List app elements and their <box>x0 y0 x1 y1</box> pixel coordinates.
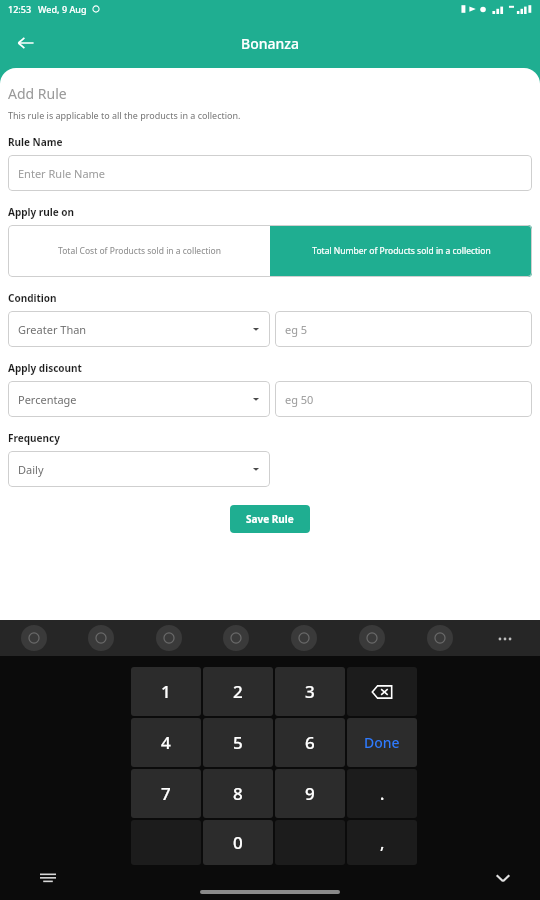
button[interactable]: , <box>347 820 417 865</box>
button[interactable]: eg 5 <box>275 311 532 347</box>
button[interactable]: eg 50 <box>275 381 532 417</box>
button[interactable]: 8 <box>203 769 273 818</box>
staticText: Frequency <box>8 431 60 445</box>
button[interactable]: Backspace <box>347 667 417 716</box>
button[interactable]: Keyboard tool 6 <box>359 625 385 651</box>
staticText: Apply rule on <box>8 205 75 219</box>
button[interactable]: Percentage <box>8 381 270 417</box>
staticText: Save Rule <box>246 512 294 526</box>
button[interactable]: 0 <box>203 820 273 865</box>
staticText: 2 <box>233 680 243 703</box>
staticText: Bonanza <box>241 34 299 53</box>
staticText: eg 5 <box>285 322 308 337</box>
staticText: Daily <box>18 462 44 477</box>
button[interactable]: Done <box>347 718 417 767</box>
staticText: Total Cost of Products sold in a collect… <box>58 245 221 257</box>
button[interactable]: Keyboard tool 2 <box>88 625 114 651</box>
staticText: 12:53 Wed, 9 Aug <box>8 3 87 15</box>
button[interactable]: 3 <box>275 667 345 716</box>
staticText: 7 <box>161 782 171 805</box>
button[interactable]: Switch keyboard <box>34 864 62 892</box>
button[interactable]: 5 <box>203 718 273 767</box>
button[interactable]: Total Cost of Products sold in a collect… <box>8 225 270 277</box>
button[interactable]: Keyboard tool 5 <box>291 625 317 651</box>
staticText: eg 50 <box>285 392 314 407</box>
button[interactable]: Save Rule <box>230 505 310 533</box>
button[interactable]: Enter Rule Name <box>8 155 532 191</box>
staticText: , <box>380 832 385 854</box>
staticText: Total Number of Products sold in a colle… <box>312 245 491 257</box>
staticText: 5 <box>233 731 243 754</box>
button[interactable]: Keyboard tool 1 <box>21 625 47 651</box>
button[interactable]: 7 <box>131 769 201 818</box>
button[interactable]: 6 <box>275 718 345 767</box>
button[interactable]: Total Number of Products sold in a colle… <box>270 225 532 277</box>
staticText: 4 <box>161 731 171 754</box>
button[interactable]: Greater Than <box>8 311 270 347</box>
button[interactable]: More options <box>494 628 516 650</box>
staticText: Greater Than <box>18 322 87 337</box>
button[interactable]: 9 <box>275 769 345 818</box>
staticText: Apply discount <box>8 361 82 375</box>
button[interactable]: 2 <box>203 667 273 716</box>
staticText: 3 <box>305 680 315 703</box>
staticText: Done <box>364 733 400 752</box>
button[interactable]: Hide keyboard <box>488 863 518 893</box>
staticText: 8 <box>233 782 243 805</box>
button[interactable]: Daily <box>8 451 270 487</box>
button[interactable]: Keyboard tool 7 <box>427 625 453 651</box>
button[interactable]: . <box>347 769 417 818</box>
staticText: Rule Name <box>8 135 63 149</box>
staticText: This rule is applicable to all the produ… <box>8 109 241 121</box>
staticText: 0 <box>233 831 243 854</box>
button[interactable]: Keyboard tool 3 <box>156 625 182 651</box>
button[interactable]: Back <box>6 23 46 63</box>
button[interactable]: 4 <box>131 718 201 767</box>
button[interactable]: 1 <box>131 667 201 716</box>
staticText: 6 <box>305 731 315 754</box>
staticText: Add Rule <box>8 84 67 103</box>
button[interactable]: Keyboard tool 4 <box>223 625 249 651</box>
staticText: Condition <box>8 291 57 305</box>
staticText: Percentage <box>18 392 77 407</box>
staticText: . <box>380 783 385 805</box>
staticText: 1 <box>161 680 171 703</box>
staticText: Enter Rule Name <box>18 166 106 181</box>
staticText: 9 <box>305 782 315 805</box>
